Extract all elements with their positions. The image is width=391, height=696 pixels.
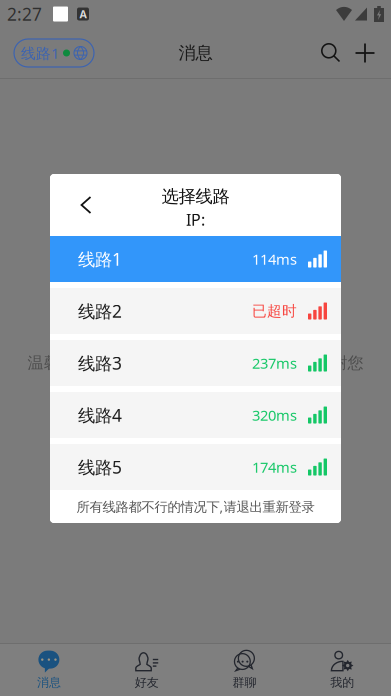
staticText: 线路1 [78, 247, 122, 270]
button[interactable]: 线路2 [50, 288, 341, 334]
button[interactable]: 线路4 [50, 392, 341, 438]
button[interactable]: Add [348, 36, 382, 70]
button[interactable]: 线路1 [50, 236, 341, 282]
button[interactable]: 线路3 [50, 340, 341, 386]
staticText: 237ms [252, 353, 297, 373]
staticText: 选择线路 [161, 186, 229, 207]
staticText: 好友 [135, 675, 159, 690]
staticText: 温馨提示您好欢迎使用本系统祝您生活愉快谢您 [27, 353, 363, 373]
staticText: A [79, 7, 86, 21]
staticText: 2:27 [7, 2, 42, 25]
staticText: 114ms [252, 249, 297, 269]
button[interactable]: Search [314, 36, 348, 70]
button[interactable]: Back [66, 185, 106, 225]
staticText: 线路1 [21, 43, 59, 63]
staticText: 我的 [330, 675, 354, 690]
button[interactable]: 线路1 [14, 39, 94, 67]
staticText: IP: [186, 209, 205, 230]
staticText: 线路2 [78, 299, 122, 322]
button[interactable]: 线路5 [50, 444, 341, 490]
button[interactable]: 好友 [98, 644, 196, 696]
staticText: 线路5 [78, 455, 122, 478]
button[interactable]: 消息 [0, 644, 98, 696]
staticText: 所有线路都不行的情况下,请退出重新登录 [76, 498, 314, 515]
staticText: 消息 [37, 675, 61, 690]
staticText: 线路3 [78, 351, 122, 374]
staticText: 174ms [252, 457, 297, 477]
staticText: 线路4 [78, 403, 122, 426]
staticText: 已超时 [252, 302, 297, 320]
staticText: 320ms [252, 405, 297, 425]
button[interactable]: 群聊 [195, 644, 293, 696]
button[interactable]: 我的 [293, 644, 391, 696]
staticText: 消息 [178, 42, 212, 64]
staticText: 群聊 [232, 675, 256, 690]
